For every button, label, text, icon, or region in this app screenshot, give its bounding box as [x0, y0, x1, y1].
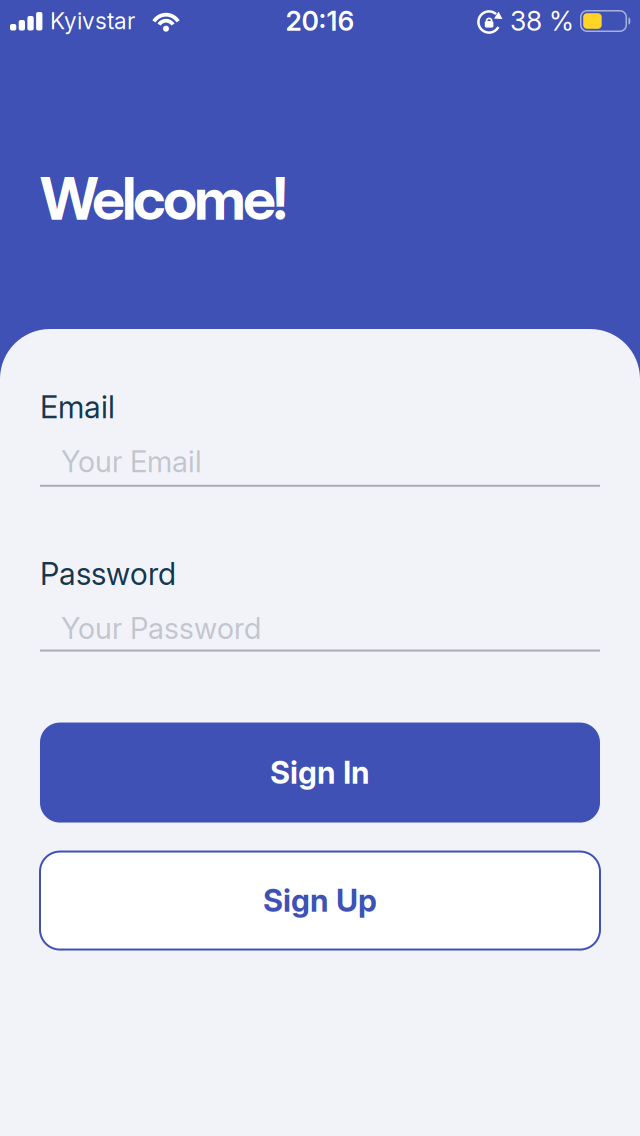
staticText: Sign Up [263, 882, 377, 919]
staticText: Welcome! [40, 163, 287, 234]
staticText: Kyivstar [50, 8, 135, 34]
staticText: 38 % [510, 5, 574, 37]
button[interactable]: Your Email [40, 444, 600, 487]
button[interactable]: Sign In [40, 723, 600, 823]
button[interactable]: Sign Up [40, 852, 600, 950]
staticText: 20:16 [285, 5, 354, 37]
staticText: Sign In [270, 754, 370, 791]
staticText: Email [40, 389, 115, 425]
staticText: Your Email [61, 444, 202, 479]
button[interactable]: Your Password [40, 611, 600, 651]
staticText: Password [40, 556, 176, 592]
staticText: Your Password [61, 611, 261, 645]
